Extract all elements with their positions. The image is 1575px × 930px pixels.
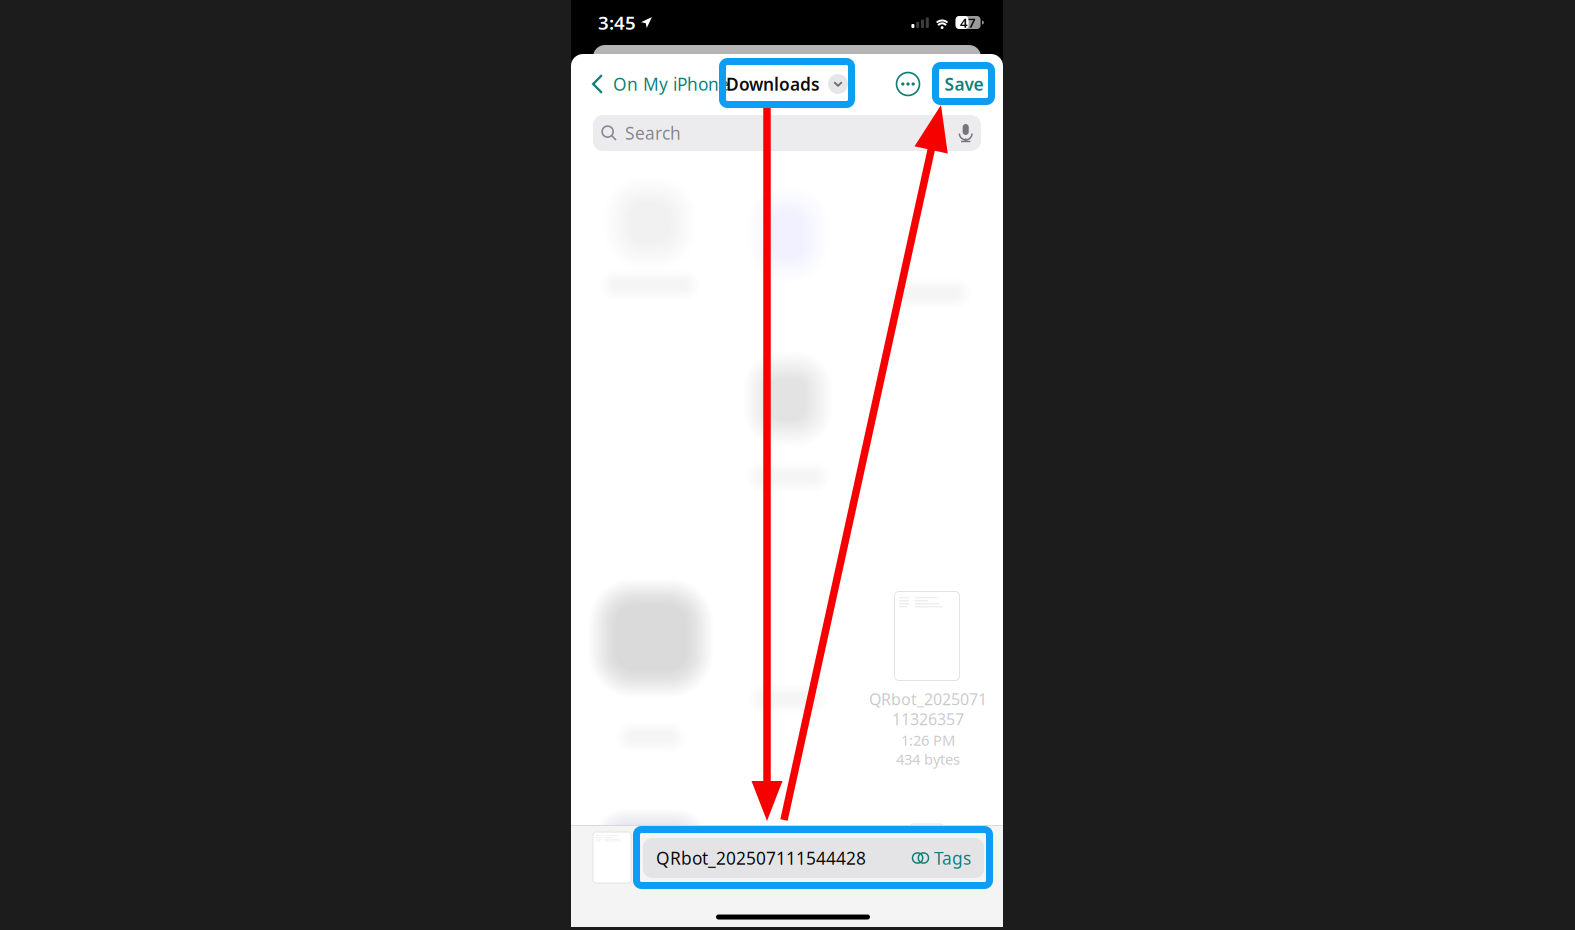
staticText: Tags — [934, 846, 971, 869]
staticText: Save — [944, 72, 983, 95]
staticText: 434 bytes — [896, 749, 960, 769]
staticText: QRbot_202507111544428 — [656, 846, 866, 869]
button[interactable]: Search — [593, 115, 981, 151]
staticText: QRbot_2025071 — [869, 688, 987, 710]
staticText: 3:45 — [598, 10, 636, 35]
staticText: On My iPhone — [613, 72, 729, 95]
staticText: Downloads — [726, 72, 820, 95]
button[interactable]: QRbot_202507111544428 — [643, 838, 984, 878]
button[interactable]: More options — [890, 64, 926, 104]
button[interactable]: Save — [932, 64, 997, 104]
button[interactable]: Downloads — [726, 64, 848, 104]
staticText: 11326357 — [892, 708, 964, 730]
staticText: 1:26 PM — [901, 730, 955, 750]
button[interactable]: On My iPhone — [579, 64, 735, 104]
staticText: Search — [625, 121, 681, 144]
staticText: 47 — [960, 14, 976, 31]
